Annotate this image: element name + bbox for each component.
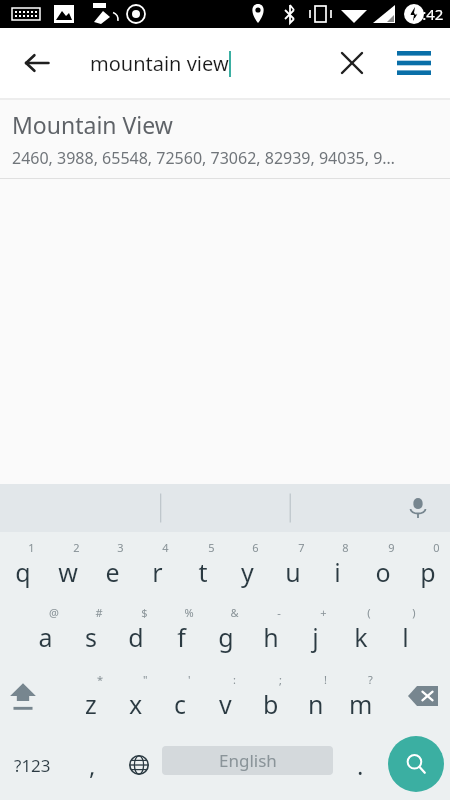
staticText: ,: [89, 749, 96, 782]
staticText: Mountain View: [12, 109, 173, 140]
staticText: 15:42: [405, 4, 444, 24]
button[interactable]: ?: [338, 662, 383, 730]
staticText: 2460, 3988, 65548, 72560, 73062, 82939, …: [12, 147, 395, 169]
button[interactable]: !: [293, 662, 338, 730]
staticText: s: [85, 620, 97, 654]
staticText: 1: [28, 540, 35, 555]
button[interactable]: ": [113, 662, 158, 730]
staticText: 3: [117, 540, 124, 555]
staticText: f: [177, 620, 186, 654]
staticText: h: [263, 620, 279, 654]
staticText: v: [219, 687, 232, 721]
button[interactable]: $: [113, 597, 158, 662]
staticText: @: [49, 605, 59, 620]
staticText: (: [367, 605, 371, 620]
button[interactable]: 2: [45, 532, 90, 597]
staticText: English: [219, 749, 277, 772]
staticText: 0: [433, 540, 440, 555]
staticText: *: [97, 672, 104, 687]
staticText: w: [58, 555, 78, 589]
button[interactable]: 0: [405, 532, 450, 597]
button[interactable]: Menu: [388, 37, 440, 89]
staticText: ): [412, 605, 416, 620]
button[interactable]: ;: [248, 662, 293, 730]
button[interactable]: +: [293, 597, 338, 662]
button[interactable]: -: [248, 597, 293, 662]
staticText: 4: [162, 540, 169, 555]
staticText: %: [184, 605, 194, 620]
button[interactable]: #: [68, 597, 113, 662]
staticText: e: [105, 555, 120, 589]
button[interactable]: Shift: [0, 662, 45, 730]
button[interactable]: Mountain View: [0, 100, 450, 178]
staticText: r: [152, 555, 163, 589]
staticText: y: [241, 555, 254, 589]
staticText: !: [324, 672, 327, 687]
staticText: 8: [342, 540, 349, 555]
staticText: x: [129, 687, 143, 721]
button[interactable]: Voice input: [396, 486, 440, 530]
button[interactable]: 3: [90, 532, 135, 597]
button[interactable]: ': [158, 662, 203, 730]
staticText: .: [357, 749, 364, 782]
button[interactable]: Clear query: [328, 39, 376, 87]
button[interactable]: :: [203, 662, 248, 730]
staticText: o: [375, 555, 391, 589]
staticText: m: [349, 687, 373, 721]
staticText: n: [308, 687, 324, 721]
button[interactable]: 4: [135, 532, 180, 597]
staticText: ?: [368, 672, 373, 687]
button[interactable]: English: [162, 746, 333, 775]
staticText: d: [128, 620, 144, 654]
staticText: j: [312, 620, 319, 654]
staticText: 7: [298, 540, 305, 555]
staticText: 2: [73, 540, 80, 555]
staticText: -: [277, 605, 281, 620]
staticText: t: [198, 555, 208, 589]
button[interactable]: .: [338, 730, 382, 800]
staticText: $: [141, 605, 148, 620]
button[interactable]: 5: [180, 532, 225, 597]
staticText: a: [38, 620, 53, 654]
staticText: 9: [388, 540, 395, 555]
staticText: 6: [252, 540, 259, 555]
staticText: q: [15, 555, 31, 589]
staticText: :: [233, 672, 236, 687]
button[interactable]: &: [203, 597, 248, 662]
staticText: ;: [279, 672, 282, 687]
staticText: 5: [208, 540, 215, 555]
button[interactable]: Backspace: [396, 662, 450, 730]
staticText: #: [95, 605, 103, 620]
staticText: ': [188, 672, 191, 687]
staticText: l: [402, 620, 409, 654]
button[interactable]: 6: [225, 532, 270, 597]
button[interactable]: ?123: [0, 730, 64, 800]
button[interactable]: %: [158, 597, 203, 662]
staticText: +: [320, 605, 327, 620]
staticText: c: [174, 687, 187, 721]
staticText: i: [334, 555, 341, 589]
staticText: ?123: [14, 754, 51, 777]
staticText: &: [230, 605, 239, 620]
button[interactable]: 1: [0, 532, 45, 597]
button[interactable]: ): [383, 597, 428, 662]
staticText: z: [85, 687, 97, 721]
button[interactable]: 8: [315, 532, 360, 597]
staticText: p: [420, 555, 436, 589]
button[interactable]: Back: [10, 36, 64, 90]
staticText: b: [263, 687, 279, 721]
staticText: u: [285, 555, 301, 589]
button[interactable]: *: [68, 662, 113, 730]
button[interactable]: ,: [68, 730, 116, 800]
staticText: g: [218, 620, 234, 654]
button[interactable]: @: [23, 597, 68, 662]
button[interactable]: Search: [388, 736, 444, 792]
staticText: ": [143, 672, 148, 687]
button[interactable]: Change language: [116, 730, 162, 800]
button[interactable]: 9: [360, 532, 405, 597]
button[interactable]: (: [338, 597, 383, 662]
button[interactable]: 7: [270, 532, 315, 597]
staticText: mountain view: [90, 50, 229, 77]
staticText: k: [354, 620, 368, 654]
